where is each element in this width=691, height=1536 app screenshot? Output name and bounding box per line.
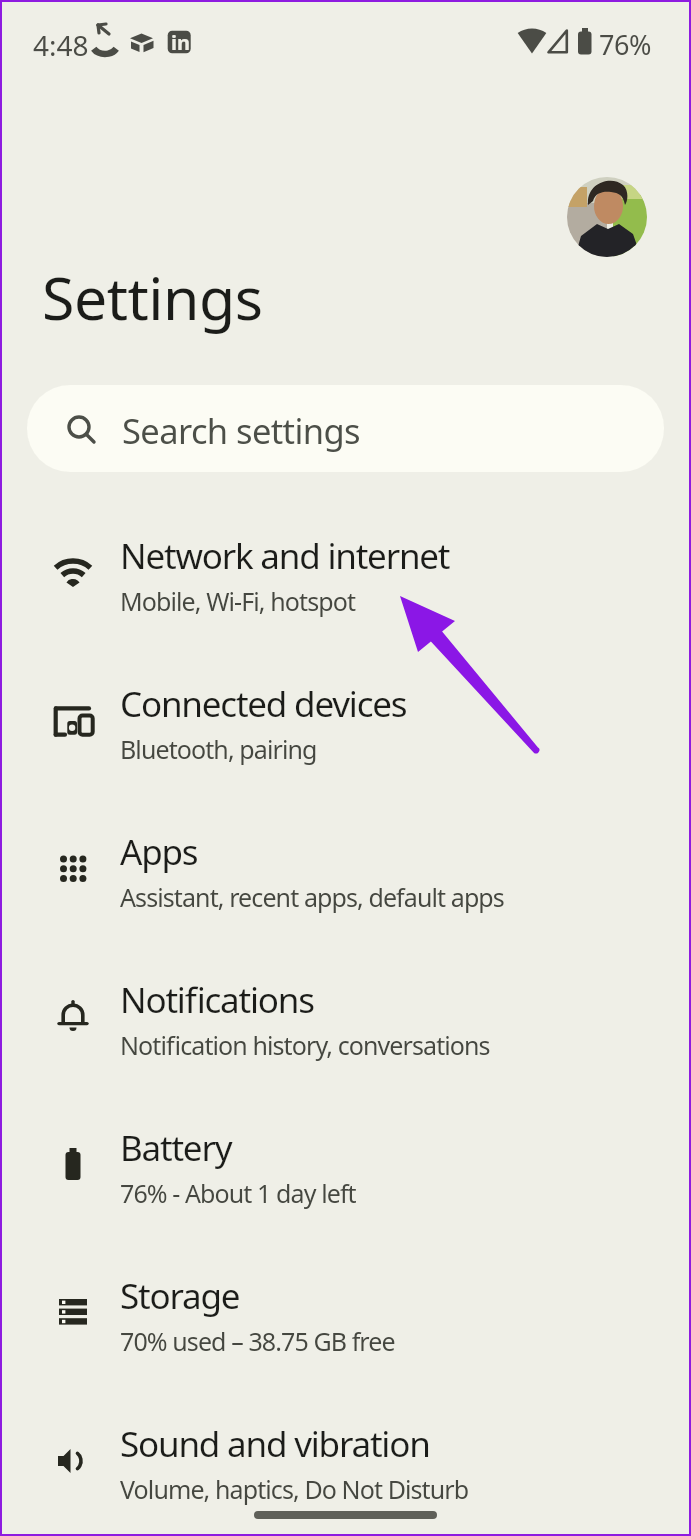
staticText: Storage <box>120 1272 240 1320</box>
button[interactable] <box>567 177 647 257</box>
staticText: Assistant, recent apps, default apps <box>120 880 504 914</box>
button[interactable] <box>20 1413 671 1517</box>
button[interactable] <box>20 1117 671 1221</box>
staticText: Apps <box>120 828 198 876</box>
button[interactable] <box>20 821 671 925</box>
button[interactable] <box>27 385 664 472</box>
staticText: Network and internet <box>120 532 450 580</box>
staticText: 4:48 <box>33 26 89 64</box>
button[interactable] <box>20 1265 671 1369</box>
staticText: 76% - About 1 day left <box>120 1176 356 1210</box>
button[interactable] <box>20 673 671 777</box>
staticText: Connected devices <box>120 680 407 728</box>
staticText: Settings <box>42 257 263 337</box>
staticText: Battery <box>120 1124 232 1172</box>
staticText: in <box>171 29 190 56</box>
staticText: 76% <box>599 26 651 63</box>
staticText: Mobile, Wi-Fi, hotspot <box>120 584 356 618</box>
button[interactable] <box>20 525 671 629</box>
staticText: Volume, haptics, Do Not Disturb <box>120 1472 469 1506</box>
staticText: Bluetooth, pairing <box>120 732 317 766</box>
staticText: Notifications <box>120 976 314 1024</box>
staticText: Search settings <box>122 407 361 454</box>
button[interactable] <box>20 969 671 1073</box>
staticText: 70% used – 38.75 GB free <box>120 1324 395 1358</box>
staticText: Sound and vibration <box>120 1420 430 1468</box>
staticText: Notification history, conversations <box>120 1028 490 1062</box>
